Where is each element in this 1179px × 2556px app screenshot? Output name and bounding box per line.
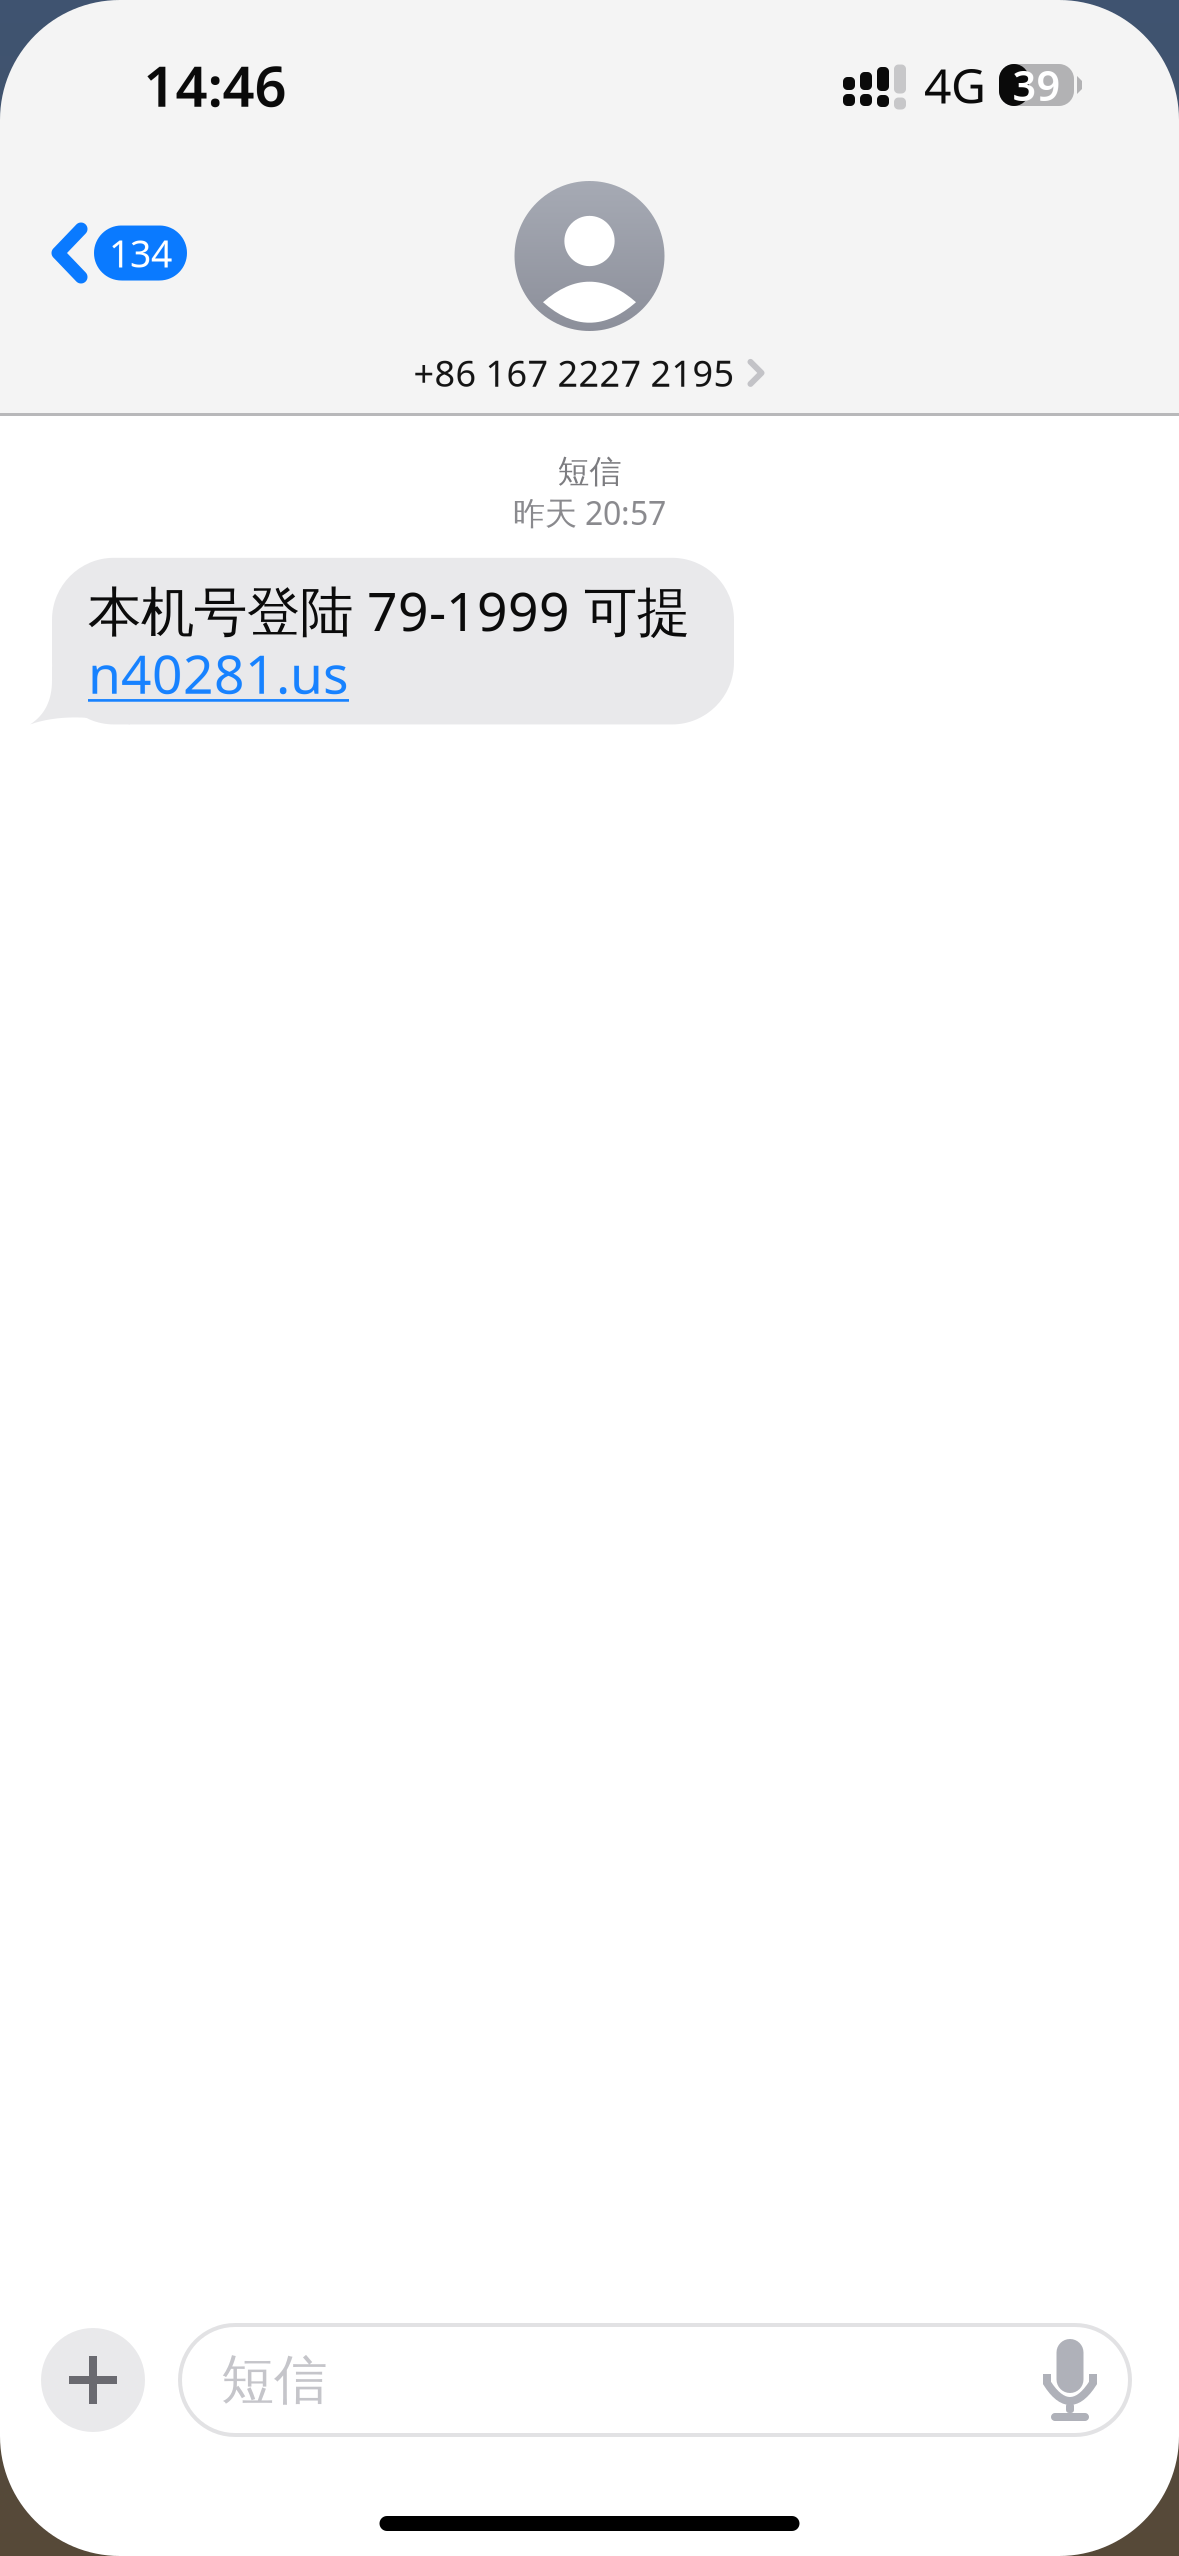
staticText: +86 167 2227 2195 (413, 349, 734, 397)
staticText: 39 (1012, 58, 1060, 112)
staticText: 4G (924, 53, 986, 117)
staticText: 短信 (557, 452, 621, 491)
button[interactable]: Add attachment (41, 2328, 145, 2432)
button[interactable]: Contact details for +86 167 2227 2195 (413, 170, 765, 403)
staticText: n40281.us (88, 638, 349, 708)
staticText: 134 (109, 228, 172, 278)
staticText: 昨天 20:57 (513, 491, 666, 534)
staticText: 14:46 (143, 48, 286, 122)
staticText: 短信 (221, 2347, 327, 2413)
button[interactable]: Dictate message (1040, 2339, 1100, 2421)
button[interactable]: Back to 134 conversations (0, 196, 211, 310)
staticText: 本机号登陆 79-1999 可提 (88, 575, 690, 646)
